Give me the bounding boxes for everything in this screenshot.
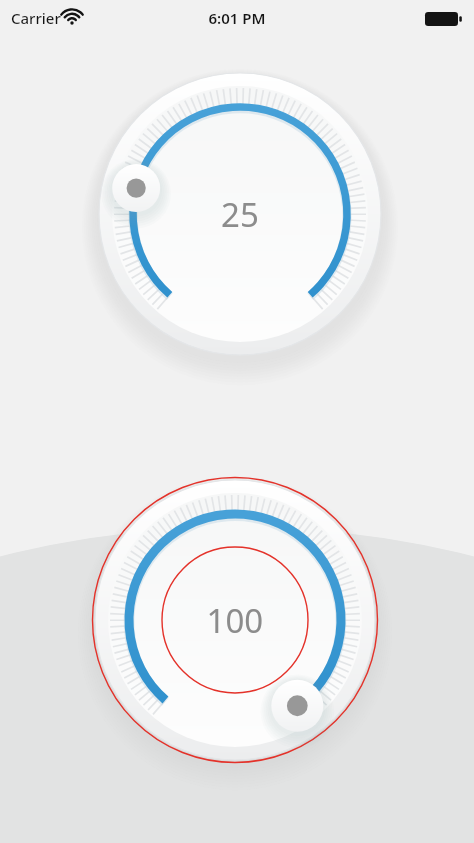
button[interactable]: Circular knob, value 100 bbox=[93, 478, 377, 762]
button[interactable]: Circular knob, value 25 bbox=[99, 73, 381, 355]
